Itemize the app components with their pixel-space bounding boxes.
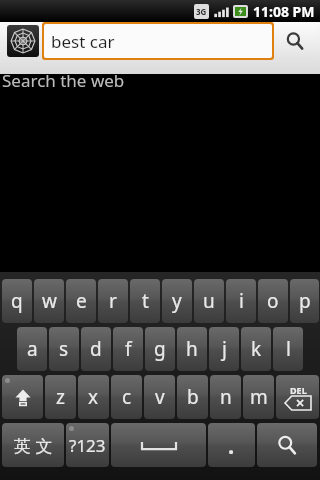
button[interactable]: i <box>226 279 256 323</box>
button[interactable]: b <box>177 375 208 419</box>
staticText: 3G <box>196 6 207 17</box>
button[interactable]: h <box>177 327 207 371</box>
staticText: u <box>203 288 215 314</box>
button[interactable]: 英 文 <box>2 423 64 467</box>
button[interactable]: u <box>194 279 224 323</box>
button[interactable]: Shift <box>2 375 43 419</box>
staticText: e <box>76 288 87 314</box>
staticText: o <box>267 288 279 314</box>
staticText: k <box>251 336 262 362</box>
button[interactable]: t <box>130 279 160 323</box>
button[interactable]: d <box>81 327 111 371</box>
button[interactable]: best car <box>44 24 272 58</box>
staticText: a <box>27 336 38 362</box>
button[interactable]: n <box>210 375 241 419</box>
staticText: q <box>11 288 23 314</box>
staticText: n <box>220 384 232 410</box>
staticText: l <box>286 336 291 362</box>
staticText: best car <box>51 30 115 53</box>
staticText: g <box>154 336 166 362</box>
button[interactable]: Search <box>257 423 317 467</box>
button[interactable]: g <box>145 327 175 371</box>
button[interactable]: e <box>66 279 96 323</box>
button[interactable]: v <box>144 375 175 419</box>
staticText: v <box>155 384 165 410</box>
staticText: . <box>228 430 235 460</box>
staticText: p <box>299 288 311 314</box>
button[interactable]: m <box>243 375 274 419</box>
button[interactable]: r <box>98 279 128 323</box>
button[interactable]: o <box>258 279 288 323</box>
staticText: m <box>250 384 268 410</box>
staticText: r <box>109 288 117 314</box>
button[interactable]: f <box>113 327 143 371</box>
button[interactable]: . <box>208 423 255 467</box>
staticText: b <box>187 384 199 410</box>
button[interactable]: ?123 <box>66 423 109 467</box>
button[interactable]: Space <box>111 423 206 467</box>
button[interactable]: z <box>45 375 76 419</box>
button[interactable]: Search <box>274 22 316 60</box>
button[interactable]: k <box>241 327 271 371</box>
staticText: w <box>42 288 57 314</box>
button[interactable]: App icon <box>7 25 39 57</box>
button[interactable]: l <box>273 327 303 371</box>
staticText: s <box>59 336 69 362</box>
staticText: j <box>222 336 227 362</box>
staticText: i <box>239 288 244 314</box>
button[interactable]: q <box>2 279 32 323</box>
button[interactable]: p <box>290 279 319 323</box>
button[interactable]: j <box>209 327 239 371</box>
button[interactable]: s <box>49 327 79 371</box>
button[interactable]: x <box>78 375 109 419</box>
staticText: t <box>142 288 149 314</box>
staticText: d <box>90 336 102 362</box>
staticText: f <box>125 336 132 362</box>
staticText: h <box>186 336 198 362</box>
staticText: 英 文 <box>14 434 53 457</box>
staticText: 11:08 PM <box>253 2 315 21</box>
staticText: y <box>172 288 182 314</box>
staticText: x <box>88 384 99 410</box>
staticText: c <box>122 384 132 410</box>
button[interactable]: a <box>17 327 47 371</box>
staticText: z <box>56 384 65 410</box>
button[interactable]: y <box>162 279 192 323</box>
staticText: DEL <box>290 384 307 396</box>
button[interactable]: c <box>111 375 142 419</box>
button[interactable]: Delete <box>276 375 319 419</box>
staticText: ?123 <box>69 434 106 457</box>
staticText: Search the web <box>2 69 125 91</box>
button[interactable]: w <box>34 279 64 323</box>
